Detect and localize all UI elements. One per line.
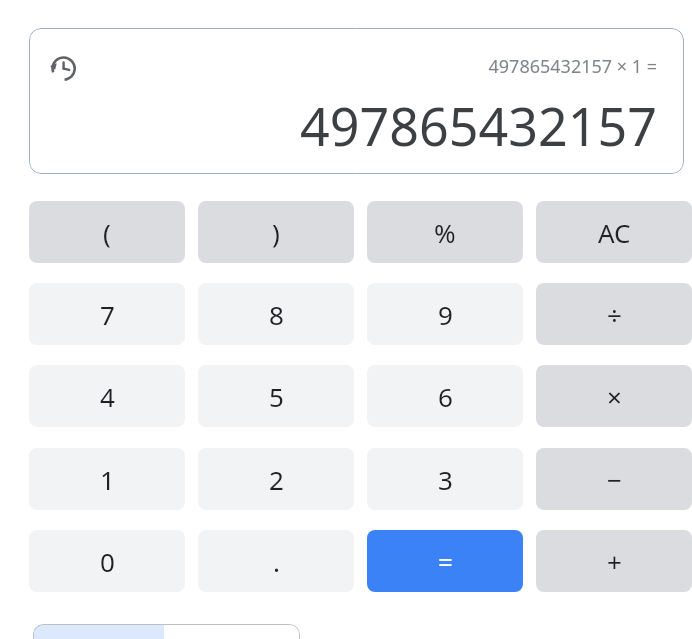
button[interactable]: 0 [29,530,185,592]
button[interactable]: 9 [367,283,523,345]
button[interactable]: = [367,530,523,592]
button[interactable]: History [41,46,85,90]
staticText: × [607,379,622,414]
staticText: 6 [438,379,453,414]
staticText: 0 [100,544,115,579]
button[interactable]: % [367,201,523,263]
staticText: 1 [100,462,115,497]
staticText: % [434,215,456,250]
staticText: 5 [269,379,284,414]
staticText: = [438,544,453,579]
button[interactable]: 6 [367,365,523,427]
staticText: ÷ [607,297,622,332]
staticText: 2 [269,462,284,497]
staticText: 9 [438,297,453,332]
button[interactable]: . [198,530,354,592]
button[interactable]: ÷ [536,283,692,345]
staticText: 497865432157 × 1 = [29,54,657,79]
button[interactable]: 4 [29,365,185,427]
button[interactable]: 2 [198,448,354,510]
staticText: . [273,544,280,579]
staticText: 8 [269,297,284,332]
button[interactable]: 3 [367,448,523,510]
staticText: 497865432157 [29,90,657,161]
staticText: 3 [438,462,453,497]
staticText: AC [598,215,631,250]
button[interactable]: ) [198,201,354,263]
button[interactable]: 8 [198,283,354,345]
staticText: 4 [100,379,115,414]
button[interactable]: 1 [29,448,185,510]
button[interactable] [33,624,300,639]
button[interactable]: ( [29,201,185,263]
staticText: 7 [100,297,115,332]
button[interactable]: 7 [29,283,185,345]
staticText: + [607,544,622,579]
staticText: ) [272,215,280,250]
button[interactable]: 5 [198,365,354,427]
button[interactable]: × [536,365,692,427]
staticText: ( [103,215,111,250]
button[interactable]: AC [536,201,692,263]
staticText: − [607,462,622,497]
button[interactable]: − [536,448,692,510]
button[interactable]: + [536,530,692,592]
